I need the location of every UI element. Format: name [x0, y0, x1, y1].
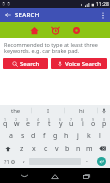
staticText: 9 — [92, 117, 95, 122]
button[interactable]: 8 — [77, 116, 88, 129]
staticText: ?1 — [4, 158, 10, 165]
button[interactable]: 5 — [44, 116, 55, 129]
staticText: the — [11, 107, 21, 115]
staticText: 2 — [15, 117, 18, 122]
button[interactable]: 6 — [55, 116, 66, 129]
button[interactable]: Search — [3, 58, 48, 69]
staticText: c — [44, 144, 48, 154]
button[interactable]: s — [17, 129, 28, 142]
button[interactable]: 3 — [22, 116, 33, 129]
button[interactable]: x — [28, 142, 40, 155]
staticText: x — [32, 144, 36, 154]
staticText: o — [91, 119, 96, 129]
staticText: Voice Search — [65, 60, 102, 68]
staticText: 0 — [103, 117, 106, 122]
staticText: w — [14, 119, 20, 129]
button[interactable]: n — [73, 142, 84, 155]
button[interactable]: d — [28, 129, 39, 142]
button[interactable]: 2 — [11, 116, 22, 129]
staticText: g — [53, 131, 58, 141]
button[interactable]: a — [5, 129, 17, 142]
button[interactable]: ?1 — [0, 155, 18, 168]
staticText: z — [20, 144, 24, 154]
staticText: 5 — [48, 117, 51, 122]
button[interactable]: g — [50, 129, 61, 142]
staticText: h — [64, 131, 69, 141]
button[interactable]: the — [0, 105, 32, 116]
staticText: d — [31, 131, 36, 141]
staticText: s — [21, 131, 25, 141]
staticText: Search — [20, 60, 40, 68]
button[interactable]: . — [81, 155, 92, 168]
button[interactable]: k — [83, 129, 94, 142]
staticText: Recommended to type at least three keywo… — [4, 41, 106, 55]
button[interactable]: Back — [17, 169, 31, 183]
staticText: e — [26, 119, 30, 129]
staticText: hi — [79, 107, 85, 115]
staticText: b — [65, 144, 70, 154]
button[interactable]: , — [18, 155, 29, 168]
staticText: 11:28 — [96, 1, 109, 8]
button[interactable]: v — [51, 142, 62, 155]
button[interactable]: c — [40, 142, 51, 155]
staticText: 6 — [59, 117, 62, 122]
staticText: 4 — [37, 117, 40, 122]
button[interactable]: h — [61, 129, 72, 142]
button[interactable]: 9 — [88, 116, 99, 129]
button[interactable]: 0 — [99, 116, 110, 129]
staticText: I — [47, 107, 50, 115]
staticText: f — [43, 131, 46, 141]
staticText: 7 — [70, 117, 73, 122]
button[interactable]: Saved — [68, 22, 85, 38]
staticText: 1 — [4, 117, 7, 122]
staticText: q — [3, 119, 8, 129]
button[interactable]: Recent searches — [47, 22, 64, 38]
button[interactable]: 4 — [33, 116, 44, 129]
button[interactable]: b — [62, 142, 73, 155]
staticText: a — [9, 131, 13, 141]
button[interactable]: Home — [26, 22, 43, 38]
staticText: p — [102, 119, 107, 129]
button[interactable]: hi — [65, 105, 98, 116]
staticText: n — [76, 144, 81, 154]
staticText: i — [82, 119, 84, 129]
staticText: SEARCH — [15, 11, 40, 19]
staticText: l — [99, 131, 101, 141]
staticText: , — [23, 155, 25, 165]
button[interactable]: Shift — [0, 142, 16, 155]
staticText: k — [87, 131, 91, 141]
staticText: m — [86, 144, 93, 154]
staticText: . — [86, 155, 88, 165]
button[interactable]: l — [94, 129, 105, 142]
button[interactable]: z — [16, 142, 28, 155]
staticText: 3 — [26, 117, 29, 122]
button[interactable]: 1 — [0, 116, 11, 129]
button[interactable]: Backspace — [95, 142, 110, 155]
staticText: t — [48, 119, 51, 129]
button[interactable]: Recents — [79, 169, 93, 183]
staticText: 8 — [81, 117, 84, 122]
staticText: y — [59, 119, 63, 129]
button[interactable]: Enter — [92, 155, 110, 168]
button[interactable]: Voice input — [98, 105, 110, 116]
staticText: v — [55, 144, 59, 154]
staticText: u — [69, 119, 74, 129]
button[interactable]: Home — [48, 169, 62, 183]
button[interactable]: More options — [98, 10, 108, 20]
button[interactable]: f — [39, 129, 50, 142]
staticText: j — [77, 131, 79, 141]
button[interactable]: m — [84, 142, 95, 155]
button[interactable]: Voice Search — [51, 58, 107, 69]
button[interactable]: I — [32, 105, 65, 116]
button[interactable]: j — [72, 129, 83, 142]
button[interactable]: 7 — [66, 116, 77, 129]
staticText: r — [37, 119, 40, 129]
button[interactable]: Back — [3, 10, 13, 20]
